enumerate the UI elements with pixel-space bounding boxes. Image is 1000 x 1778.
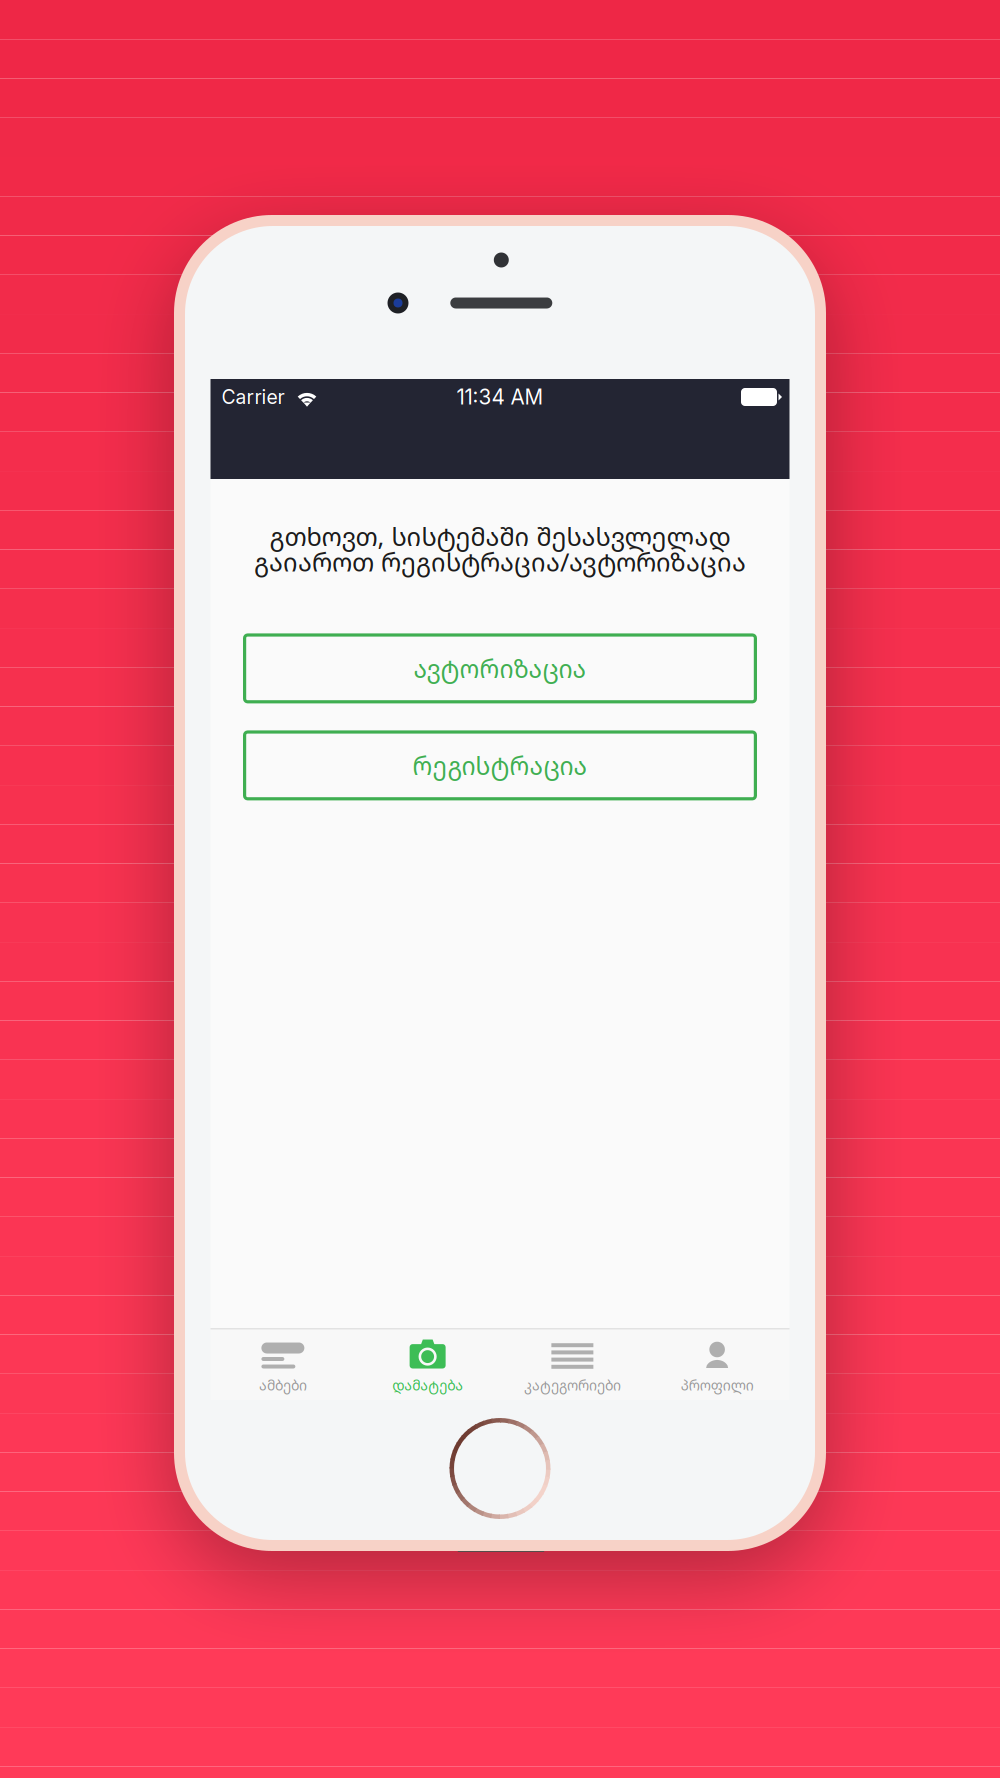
- staticText: კატეგორიები: [524, 1375, 621, 1394]
- button[interactable]: კატეგორიები: [500, 1329, 645, 1400]
- staticText: ამბები: [259, 1375, 307, 1394]
- staticText: ავტორიზაცია: [413, 652, 586, 685]
- staticText: გაიაროთ რეგისტრაცია/ავტორიზაცია: [254, 544, 746, 579]
- staticText: დამატება: [392, 1375, 463, 1394]
- staticText: პროფილი: [681, 1375, 754, 1394]
- staticText: გთხოვთ, სისტემაში შესასვლელად: [269, 519, 730, 553]
- button[interactable]: რეგისტრაცია: [243, 730, 757, 800]
- button[interactable]: პროფილი: [645, 1329, 790, 1400]
- button[interactable]: დამატება: [355, 1329, 500, 1400]
- staticText: რეგისტრაცია: [412, 749, 587, 782]
- staticText: 11:34 AM: [456, 384, 543, 409]
- button[interactable]: ამბები: [210, 1329, 355, 1400]
- button[interactable]: ავტორიზაცია: [243, 633, 757, 703]
- staticText: Carrier: [221, 385, 284, 409]
